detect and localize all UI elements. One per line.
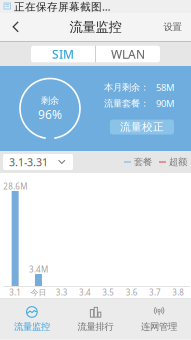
staticText: 今日 <box>30 288 46 297</box>
staticText: 流量监控 <box>14 321 50 332</box>
staticText: WLAN <box>111 46 145 62</box>
staticText: 3.1-3.31 <box>9 155 48 169</box>
staticText: 3.8 <box>172 287 184 298</box>
button[interactable]: 流量监控 <box>0 299 64 340</box>
button[interactable]: 连网管理 <box>127 299 191 340</box>
button[interactable]: WLAN <box>96 46 160 62</box>
staticText: 剩余 <box>41 95 59 106</box>
staticText: 96% <box>38 106 62 122</box>
staticText: 设置 <box>163 21 181 33</box>
button[interactable]: 3.1-3.31 <box>3 154 73 170</box>
staticText: 超额 <box>166 156 187 168</box>
staticText: 3.7 <box>149 287 161 298</box>
staticText: SIM <box>52 46 74 62</box>
staticText: 3.3 <box>56 287 68 298</box>
staticText: 28.6M <box>3 181 27 192</box>
staticText: 套餐 <box>131 156 152 168</box>
staticText: 90M <box>156 97 174 110</box>
button[interactable]: 返回 <box>0 13 32 41</box>
staticText: 3.4 <box>79 287 91 298</box>
staticText: 流量监控 <box>69 19 121 35</box>
staticText: 本月剩余： <box>104 82 149 93</box>
staticText: 连网管理 <box>141 321 177 332</box>
button[interactable]: 流量排行 <box>64 299 127 340</box>
staticText: 3.5 <box>102 287 114 298</box>
staticText: 流量套餐： <box>104 98 149 109</box>
staticText: 3.6 <box>126 287 138 298</box>
button[interactable]: SIM <box>31 46 95 62</box>
staticText: 3.1 <box>9 287 21 298</box>
staticText: 58M <box>156 81 174 94</box>
button[interactable]: 流量校正 <box>110 119 174 134</box>
staticText: 正在保存屏幕截图… <box>14 0 110 14</box>
button[interactable]: 设置 <box>154 13 191 41</box>
staticText: 流量排行 <box>77 321 113 332</box>
staticText: 3.4M <box>29 264 48 275</box>
staticText: 流量校正 <box>120 120 164 133</box>
